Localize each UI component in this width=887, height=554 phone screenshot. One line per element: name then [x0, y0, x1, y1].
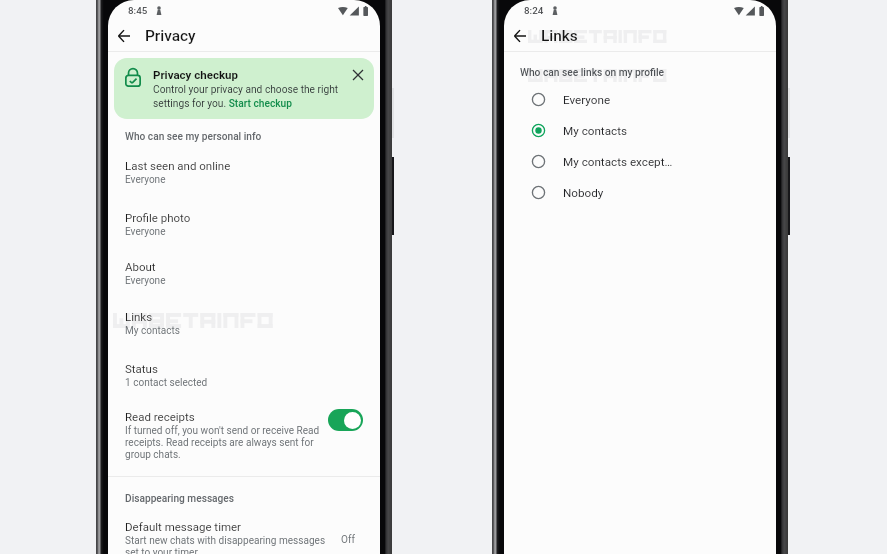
staticText: Everyone [125, 174, 166, 186]
staticText: Privacy [145, 27, 196, 45]
button[interactable]: Default message timer [108, 520, 380, 554]
button[interactable]: My contacts [504, 115, 776, 146]
staticText: If turned off, you won't send or receive… [125, 425, 322, 461]
staticText: Start new chats with disappearing messag… [125, 535, 329, 554]
staticText: My contacts except… [563, 155, 673, 169]
staticText: Privacy checkup [153, 68, 238, 81]
staticText: Everyone [125, 226, 166, 238]
staticText: Everyone [125, 275, 166, 287]
button[interactable]: Everyone [504, 84, 776, 115]
staticText: Everyone [563, 93, 611, 107]
button[interactable]: Status [108, 346, 380, 398]
staticText: Disappearing messages [125, 493, 235, 505]
staticText: Who can see my personal info [125, 131, 262, 143]
button[interactable]: Profile photo [108, 195, 380, 247]
staticText: Who can see links on my profile [520, 67, 665, 79]
button[interactable]: Read receipts [108, 398, 380, 461]
button[interactable]: My contacts except… [504, 146, 776, 177]
button[interactable]: Back [506, 22, 534, 50]
staticText: My contacts [125, 325, 181, 337]
button[interactable]: Back [110, 22, 138, 50]
button[interactable]: Last seen and online [108, 146, 380, 195]
staticText: 1 contact selected [125, 377, 208, 389]
button[interactable]: Nobody [504, 177, 776, 208]
staticText: Nobody [563, 186, 604, 200]
staticText: Control your privacy and choose the righ… [153, 84, 348, 109]
staticText: Profile photo [125, 211, 191, 224]
button[interactable]: Links [108, 296, 380, 346]
staticText: Read receipts [125, 410, 195, 423]
staticText: Status [125, 362, 158, 375]
button[interactable]: Close [347, 64, 369, 86]
button[interactable]: Privacy checkup [114, 58, 374, 119]
staticText: Last seen and online [125, 159, 231, 172]
button[interactable]: Read receipts toggle [328, 409, 363, 431]
staticText: 8:45 [128, 5, 148, 16]
staticText: Links [125, 310, 153, 323]
staticText: Default message timer [125, 520, 242, 533]
staticText: My contacts [563, 124, 628, 138]
staticText: 8:24 [524, 5, 544, 16]
staticText: About [125, 260, 156, 273]
staticText: Links [541, 27, 578, 45]
button[interactable]: About [108, 247, 380, 296]
staticText: Off [341, 534, 355, 546]
